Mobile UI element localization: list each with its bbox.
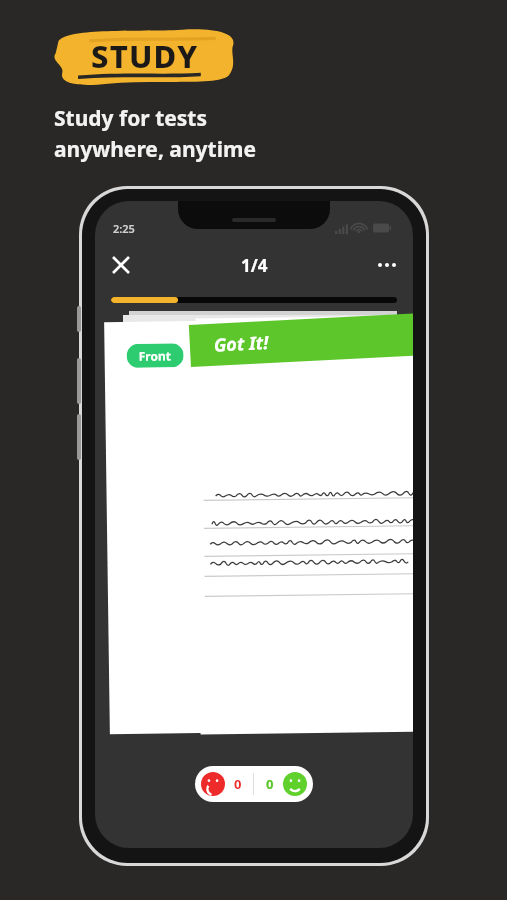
staticText: anywhere, anytime	[54, 135, 256, 164]
staticText: STUDY	[91, 35, 199, 77]
staticText: 0	[234, 775, 242, 793]
staticText: Front	[138, 347, 172, 364]
button[interactable]: Front	[104, 320, 290, 734]
button[interactable]: Got it	[254, 766, 313, 802]
staticText: 2:25	[113, 221, 135, 236]
button[interactable]: Didn't know it	[195, 766, 253, 802]
staticText: Got It!	[213, 330, 269, 358]
staticText: 0	[266, 775, 274, 793]
staticText: 1/4	[241, 254, 268, 277]
button[interactable]: Close	[101, 245, 141, 285]
staticText: Study for tests	[54, 104, 208, 133]
button[interactable]: More options	[367, 245, 407, 285]
button[interactable]: Got It!	[195, 316, 413, 734]
